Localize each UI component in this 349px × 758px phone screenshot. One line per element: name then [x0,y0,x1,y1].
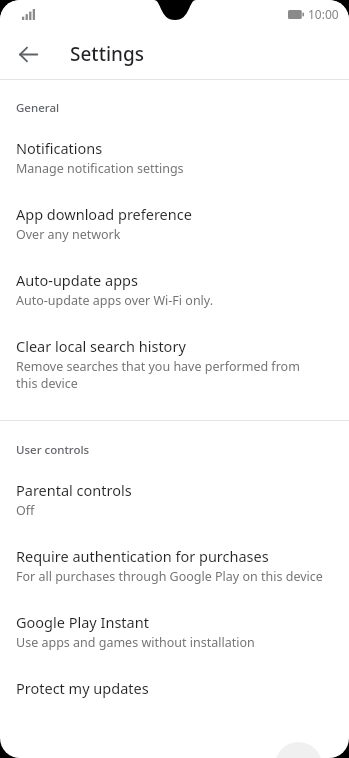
staticText: Require authentication for purchases [16,546,269,566]
button[interactable]: Protect my updates [0,665,349,711]
staticText: For all purchases through Google Play on… [16,568,323,585]
staticText: 10:00 [308,6,339,22]
staticText: Over any network [16,226,121,243]
staticText: Auto-update apps [16,270,138,290]
button[interactable]: Parental controls [0,472,349,533]
staticText: Remove searches that you have performed … [16,358,315,392]
button[interactable]: Google Play Instant [0,599,349,665]
button[interactable]: Auto-update apps [0,257,349,323]
staticText: General [16,100,60,116]
staticText: User controls [16,442,90,458]
staticText: Notifications [16,138,103,158]
staticText: Protect my updates [16,678,149,698]
staticText: Parental controls [16,480,132,500]
button[interactable]: Notifications [0,130,349,191]
staticText: Google Play Instant [16,612,149,632]
button[interactable]: Back [8,34,48,74]
staticText: Settings [70,41,144,67]
staticText: Clear local search history [16,336,186,356]
button[interactable]: App download preference [0,191,349,257]
button[interactable]: Clear local search history [0,323,349,406]
staticText: Manage notification settings [16,160,184,177]
staticText: Use apps and games without installation [16,634,255,651]
staticText: Off [16,502,35,519]
staticText: Auto-update apps over Wi-Fi only. [16,292,214,309]
staticText: App download preference [16,204,192,224]
button[interactable]: Require authentication for purchases [0,533,349,599]
